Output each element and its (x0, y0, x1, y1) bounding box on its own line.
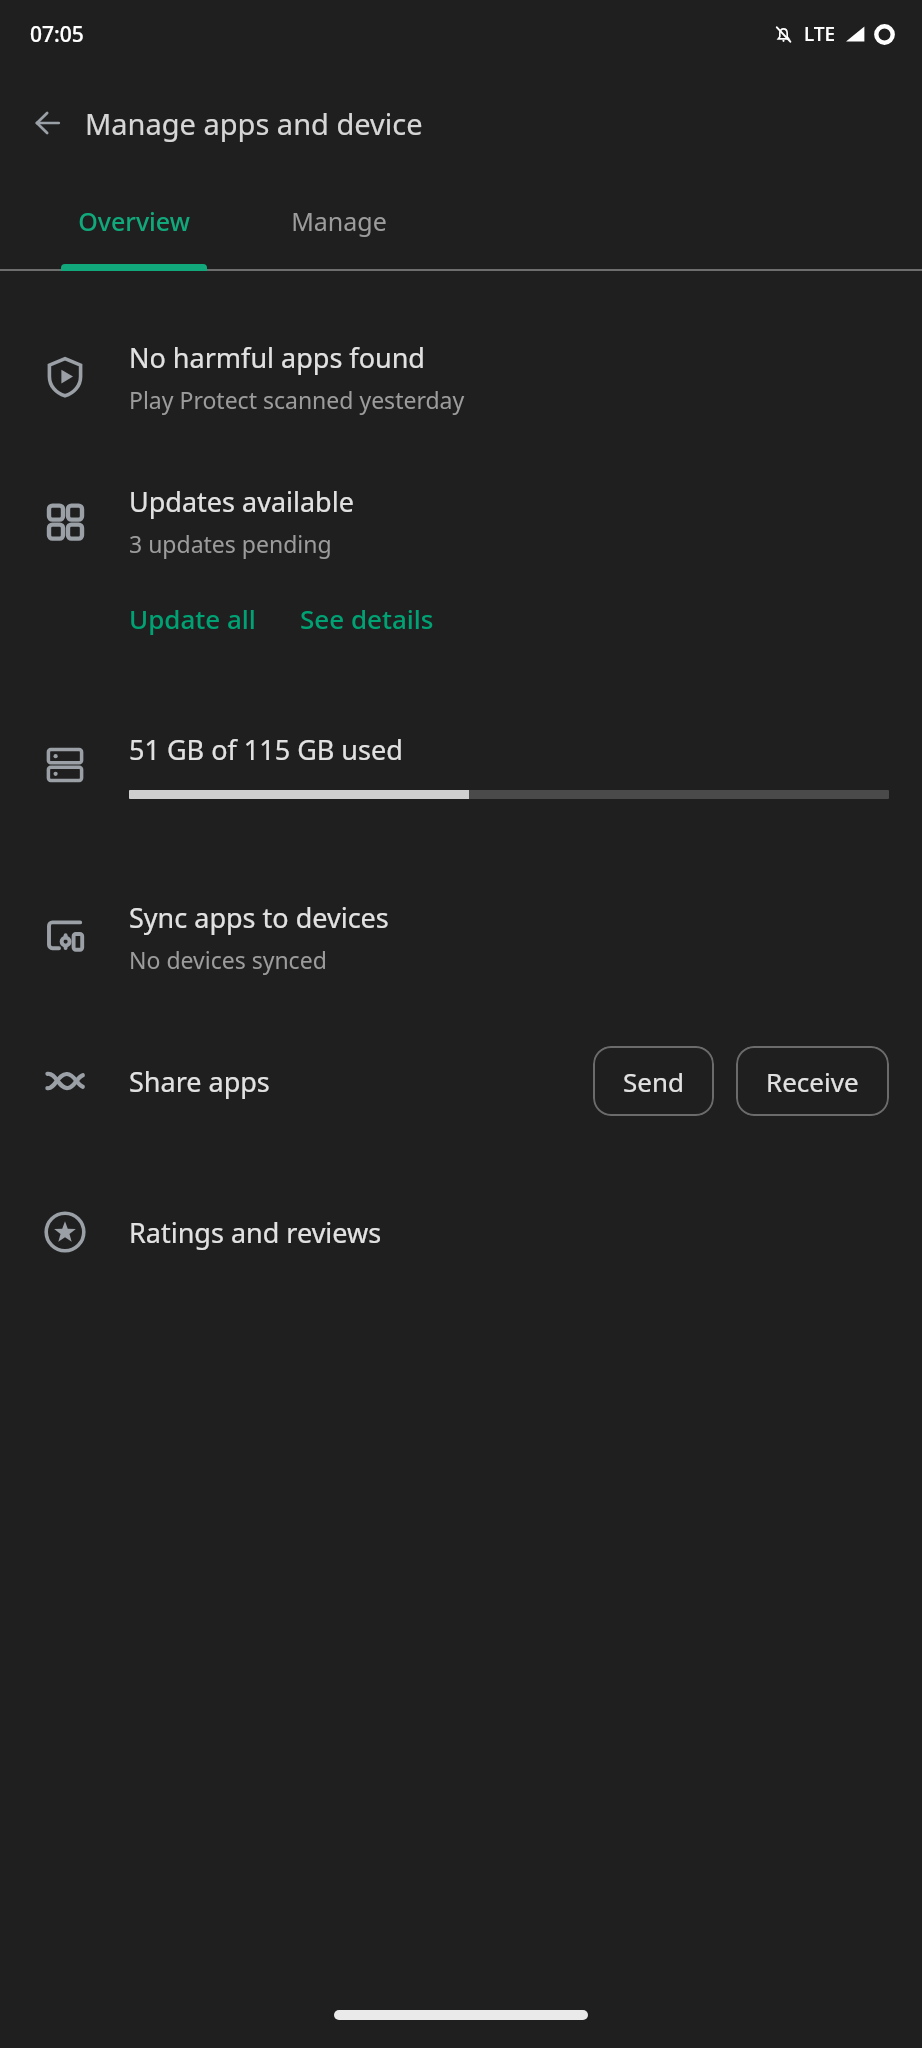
staticText: 51 GB of 115 GB used (129, 731, 403, 768)
button[interactable]: Back (15, 90, 81, 156)
staticText: Manage (291, 204, 387, 238)
button[interactable]: No harmful apps found (0, 317, 922, 437)
staticText: 3 updates pending (129, 528, 332, 559)
staticText: LTE (804, 21, 836, 47)
button[interactable]: Receive (736, 1046, 889, 1116)
staticText: See details (300, 601, 434, 636)
staticText: Updates available (129, 483, 354, 520)
staticText: Share apps (129, 1063, 270, 1100)
button[interactable]: Send (593, 1046, 714, 1116)
button[interactable]: Ratings and reviews (0, 1177, 922, 1287)
button[interactable]: See details (300, 581, 434, 655)
button[interactable]: Overview (61, 178, 207, 264)
staticText: 07:05 (30, 20, 84, 49)
staticText: No devices synced (129, 944, 327, 975)
button[interactable]: Update all (129, 581, 256, 655)
staticText: Ratings and reviews (129, 1214, 382, 1251)
button[interactable]: Manage (264, 178, 414, 264)
staticText: Receive (766, 1064, 859, 1099)
staticText: Manage apps and device (85, 104, 423, 143)
staticText: Sync apps to devices (129, 899, 389, 936)
button[interactable]: Updates available (0, 461, 922, 581)
staticText: Play Protect scanned yesterday (129, 384, 465, 415)
staticText: No harmful apps found (129, 339, 425, 376)
button[interactable]: 51 GB of 115 GB used (0, 705, 922, 825)
staticText: Update all (129, 601, 256, 636)
staticText: Send (623, 1064, 684, 1099)
button[interactable]: Sync apps to devices (0, 877, 922, 997)
staticText: Overview (78, 204, 190, 238)
